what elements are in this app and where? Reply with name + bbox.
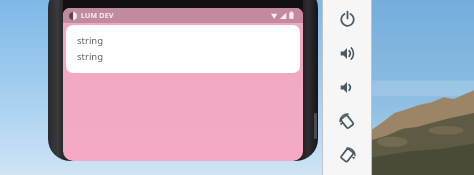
button[interactable]: Volume up — [325, 39, 369, 67]
button[interactable]: Rotate right — [325, 141, 369, 169]
staticText: string — [77, 34, 104, 47]
staticText: string — [77, 50, 104, 63]
button[interactable]: string — [66, 25, 300, 73]
staticText: LUM DEV — [81, 11, 114, 21]
button[interactable]: Power — [325, 5, 369, 33]
button[interactable]: Rotate left — [325, 107, 369, 135]
button[interactable]: Volume down — [325, 73, 369, 101]
